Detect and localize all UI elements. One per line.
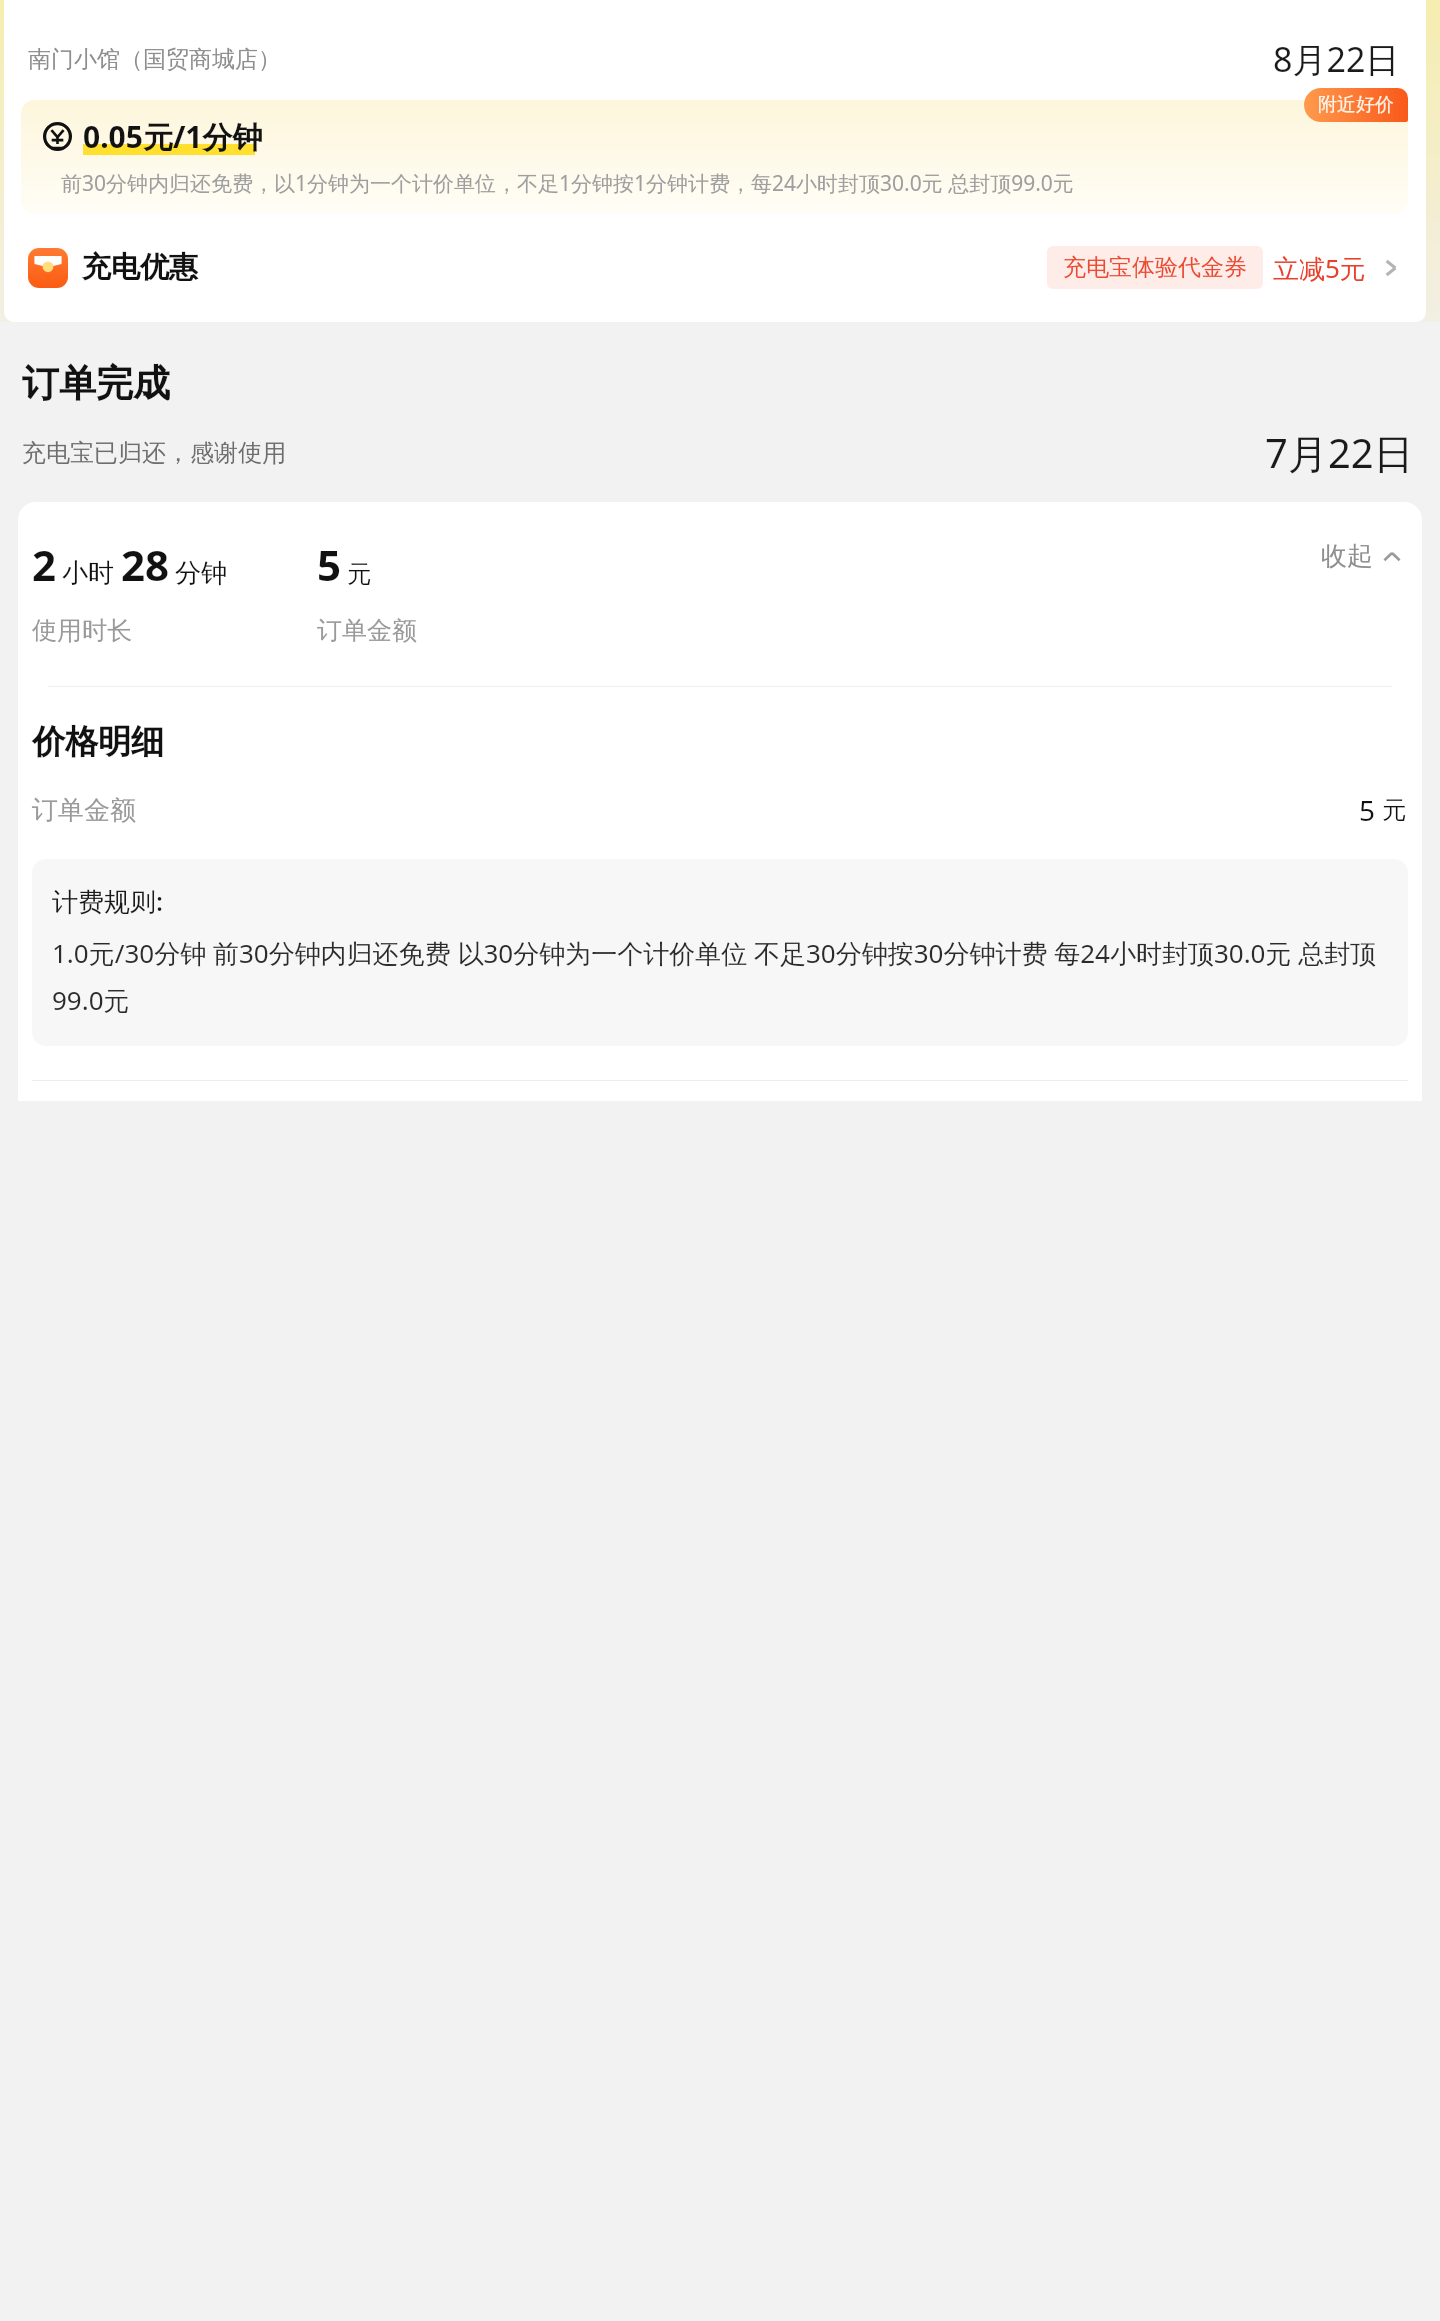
staticText: 5 xyxy=(317,536,342,593)
button[interactable]: 充电优惠 xyxy=(4,242,1426,293)
staticText: 使用时长 xyxy=(32,615,132,646)
staticText: 立减5元 xyxy=(1273,250,1366,286)
staticText: 收起 xyxy=(1321,540,1373,573)
staticText: 订单金额 xyxy=(317,615,417,646)
staticText: 充电宝已归还，感谢使用 xyxy=(22,438,286,468)
staticText: 0.05元/1分钟 xyxy=(83,116,263,157)
staticText: 计费规则: xyxy=(52,883,164,919)
staticText: 充电优惠 xyxy=(82,249,198,286)
staticText: 1.0元/30分钟 前30分钟内归还免费 以30分钟为一个计价单位 不足30分钟… xyxy=(52,935,1388,1018)
staticText: 2 xyxy=(32,536,57,593)
staticText: 南门小馆（国贸商城店） xyxy=(28,45,281,74)
staticText: 小时 xyxy=(62,557,114,590)
staticText: 28 xyxy=(121,536,170,593)
staticText: 元 xyxy=(347,559,371,589)
staticText: 附近好价 xyxy=(1318,93,1394,117)
button[interactable]: 收起 xyxy=(1317,536,1406,577)
staticText: 7月22日 xyxy=(1265,425,1414,480)
staticText: 8月22日 xyxy=(1273,36,1400,82)
staticText: 订单金额 xyxy=(32,794,136,827)
staticText: 价格明细 xyxy=(32,721,164,763)
staticText: 前30分钟内归还免费，以1分钟为一个计价单位，不足1分钟按1分钟计费，每24小时… xyxy=(61,169,1074,198)
staticText: 元 xyxy=(1382,795,1406,825)
staticText: 5 xyxy=(1359,791,1376,829)
staticText: 充电宝体验代金券 xyxy=(1063,253,1247,282)
staticText: 分钟 xyxy=(175,557,227,590)
staticText: 订单完成 xyxy=(22,360,170,407)
